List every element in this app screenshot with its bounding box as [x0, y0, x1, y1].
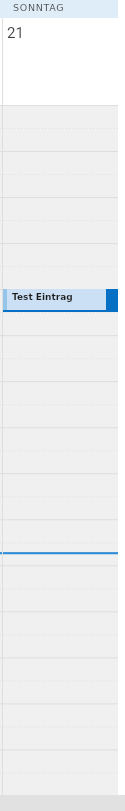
button[interactable]: Test Eintrag [2, 289, 118, 312]
button[interactable]: Test Eintrag [0, 105, 118, 795]
staticText: 21 [7, 24, 24, 42]
staticText: SONNTAG [13, 2, 65, 13]
button[interactable]: SONNTAG [0, 0, 118, 18]
button[interactable]: 21 [0, 18, 118, 105]
staticText: Test Eintrag [12, 292, 73, 302]
